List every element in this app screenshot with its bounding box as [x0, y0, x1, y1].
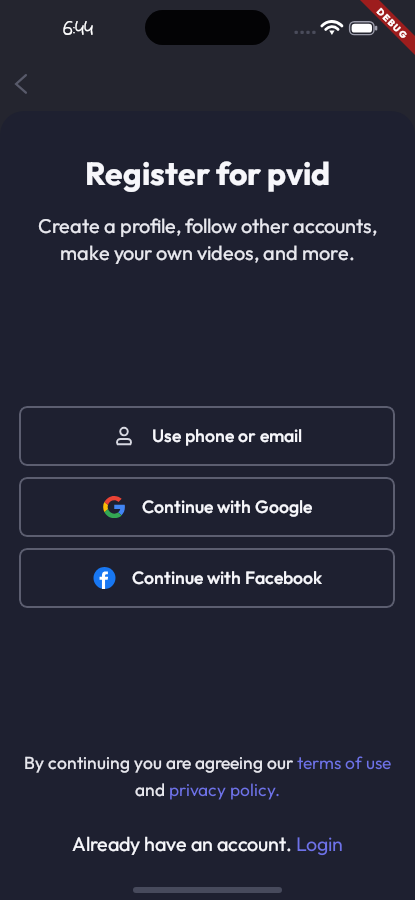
button[interactable]	[19, 548, 395, 608]
button[interactable]	[19, 406, 395, 466]
button[interactable]	[19, 477, 395, 537]
button[interactable]: Back	[0, 62, 44, 106]
